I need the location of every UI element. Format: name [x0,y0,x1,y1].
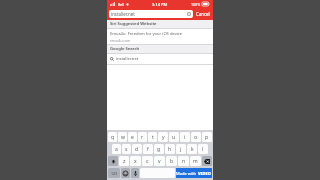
staticText: a [115,146,118,153]
staticText: installer.net [111,11,135,17]
button[interactable]: z [119,156,129,166]
button[interactable]: w [118,132,127,142]
button[interactable]: s [122,144,131,154]
staticText: c [146,158,149,165]
button[interactable]: x [130,156,141,166]
staticText: i [184,134,186,141]
staticText: d [135,146,139,153]
button[interactable]: Made with [176,168,212,178]
button[interactable]: u [169,132,179,142]
staticText: Made with [176,171,198,176]
staticText: r [141,134,144,141]
button[interactable]: a [112,144,121,154]
staticText: f [147,146,149,153]
staticText: w [121,134,125,141]
staticText: installer.net [116,56,139,62]
button[interactable]: g [154,144,164,154]
button[interactable]: c [142,156,153,166]
button[interactable]: k [187,144,197,154]
staticText: y [162,134,165,141]
button[interactable]: o [191,132,201,142]
staticText: g [157,146,161,153]
button[interactable]: 123 [108,168,120,178]
button[interactable]: d [132,144,142,154]
staticText: Google Search [110,46,140,52]
button[interactable]: b [166,156,177,166]
staticText: VIDEORAMA [198,171,212,176]
button[interactable]: y [158,132,168,142]
staticText: Siri Suggested Website [110,21,157,27]
button[interactable]: q [108,132,117,142]
button[interactable]: Clear text [187,12,191,16]
staticText: Bell [118,2,125,7]
staticText: 100% [191,2,201,7]
staticText: v [158,158,161,165]
button[interactable]: f [143,144,153,154]
button[interactable]: t [148,132,157,142]
staticText: z [123,158,126,165]
staticText: q [111,134,115,141]
button[interactable]: l [198,144,208,154]
staticText: 3:14 PM [152,2,168,7]
staticText: h [168,146,172,153]
staticText: Cancel [196,11,210,17]
staticText: m [193,158,198,165]
button[interactable]: e [128,132,137,142]
button[interactable]: h [165,144,175,154]
staticText: o [194,134,198,141]
staticText: n [182,158,186,165]
button[interactable]: installer.net [109,10,193,18]
button[interactable]: Backspace [202,156,212,166]
staticText: j [180,146,182,153]
button[interactable]: Shift [108,156,118,166]
staticText: emus4u.com [110,38,131,42]
button[interactable]: v [154,156,165,166]
staticText: b [170,158,174,165]
button[interactable]: Emus4u. Freedom for your iOS device [107,29,213,44]
staticText: 123 [111,171,118,176]
button[interactable]: r [138,132,147,142]
button[interactable]: Dictation [131,168,139,178]
button[interactable]: j [176,144,186,154]
staticText: k [191,146,194,153]
button[interactable]: i [180,132,190,142]
staticText: l [202,146,204,153]
staticText: Emus4u. Freedom for your iOS device [110,31,183,37]
button[interactable]: p [202,132,212,142]
staticText: u [172,134,176,141]
button[interactable]: Cancel [195,11,211,17]
staticText: t [152,134,154,141]
button[interactable]: m [190,156,201,166]
staticText: e [131,134,134,141]
button[interactable]: n [178,156,189,166]
staticText: x [134,158,137,165]
button[interactable]: Emoji [121,168,130,178]
button[interactable]: installer.net [107,54,213,64]
staticText: s [125,146,128,153]
staticText: p [205,134,209,141]
